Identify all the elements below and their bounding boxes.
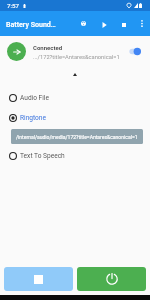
button[interactable]: Play	[95, 15, 114, 34]
staticText: Battery Sound…	[6, 20, 56, 28]
staticText: 7:57	[7, 2, 19, 9]
staticText: Text To Speech	[20, 152, 65, 160]
button[interactable]: Connected	[0, 42, 150, 64]
button[interactable]: Stop	[114, 15, 133, 34]
button[interactable]: Collapse	[67, 69, 83, 80]
staticText: Audio File	[20, 94, 49, 102]
staticText: Connected	[33, 44, 63, 51]
button[interactable]: Text To Speech	[0, 146, 150, 165]
staticText: /internal/audio/media/172?title=Antares&…	[16, 134, 138, 140]
button[interactable]: Ringtone	[0, 108, 150, 127]
button[interactable]: Audio File	[0, 88, 150, 107]
button[interactable]: Power	[77, 267, 146, 291]
staticText: Ringtone	[20, 114, 47, 122]
button[interactable]: Help	[74, 14, 93, 33]
button[interactable]: More options	[132, 14, 150, 33]
staticText: .../172?title=Antares&canonical=1	[33, 54, 120, 61]
button[interactable]: Enable sound	[126, 42, 144, 61]
button[interactable]: /internal/audio/media/172?title=Antares&…	[11, 129, 143, 144]
button[interactable]: Stop	[4, 267, 73, 291]
